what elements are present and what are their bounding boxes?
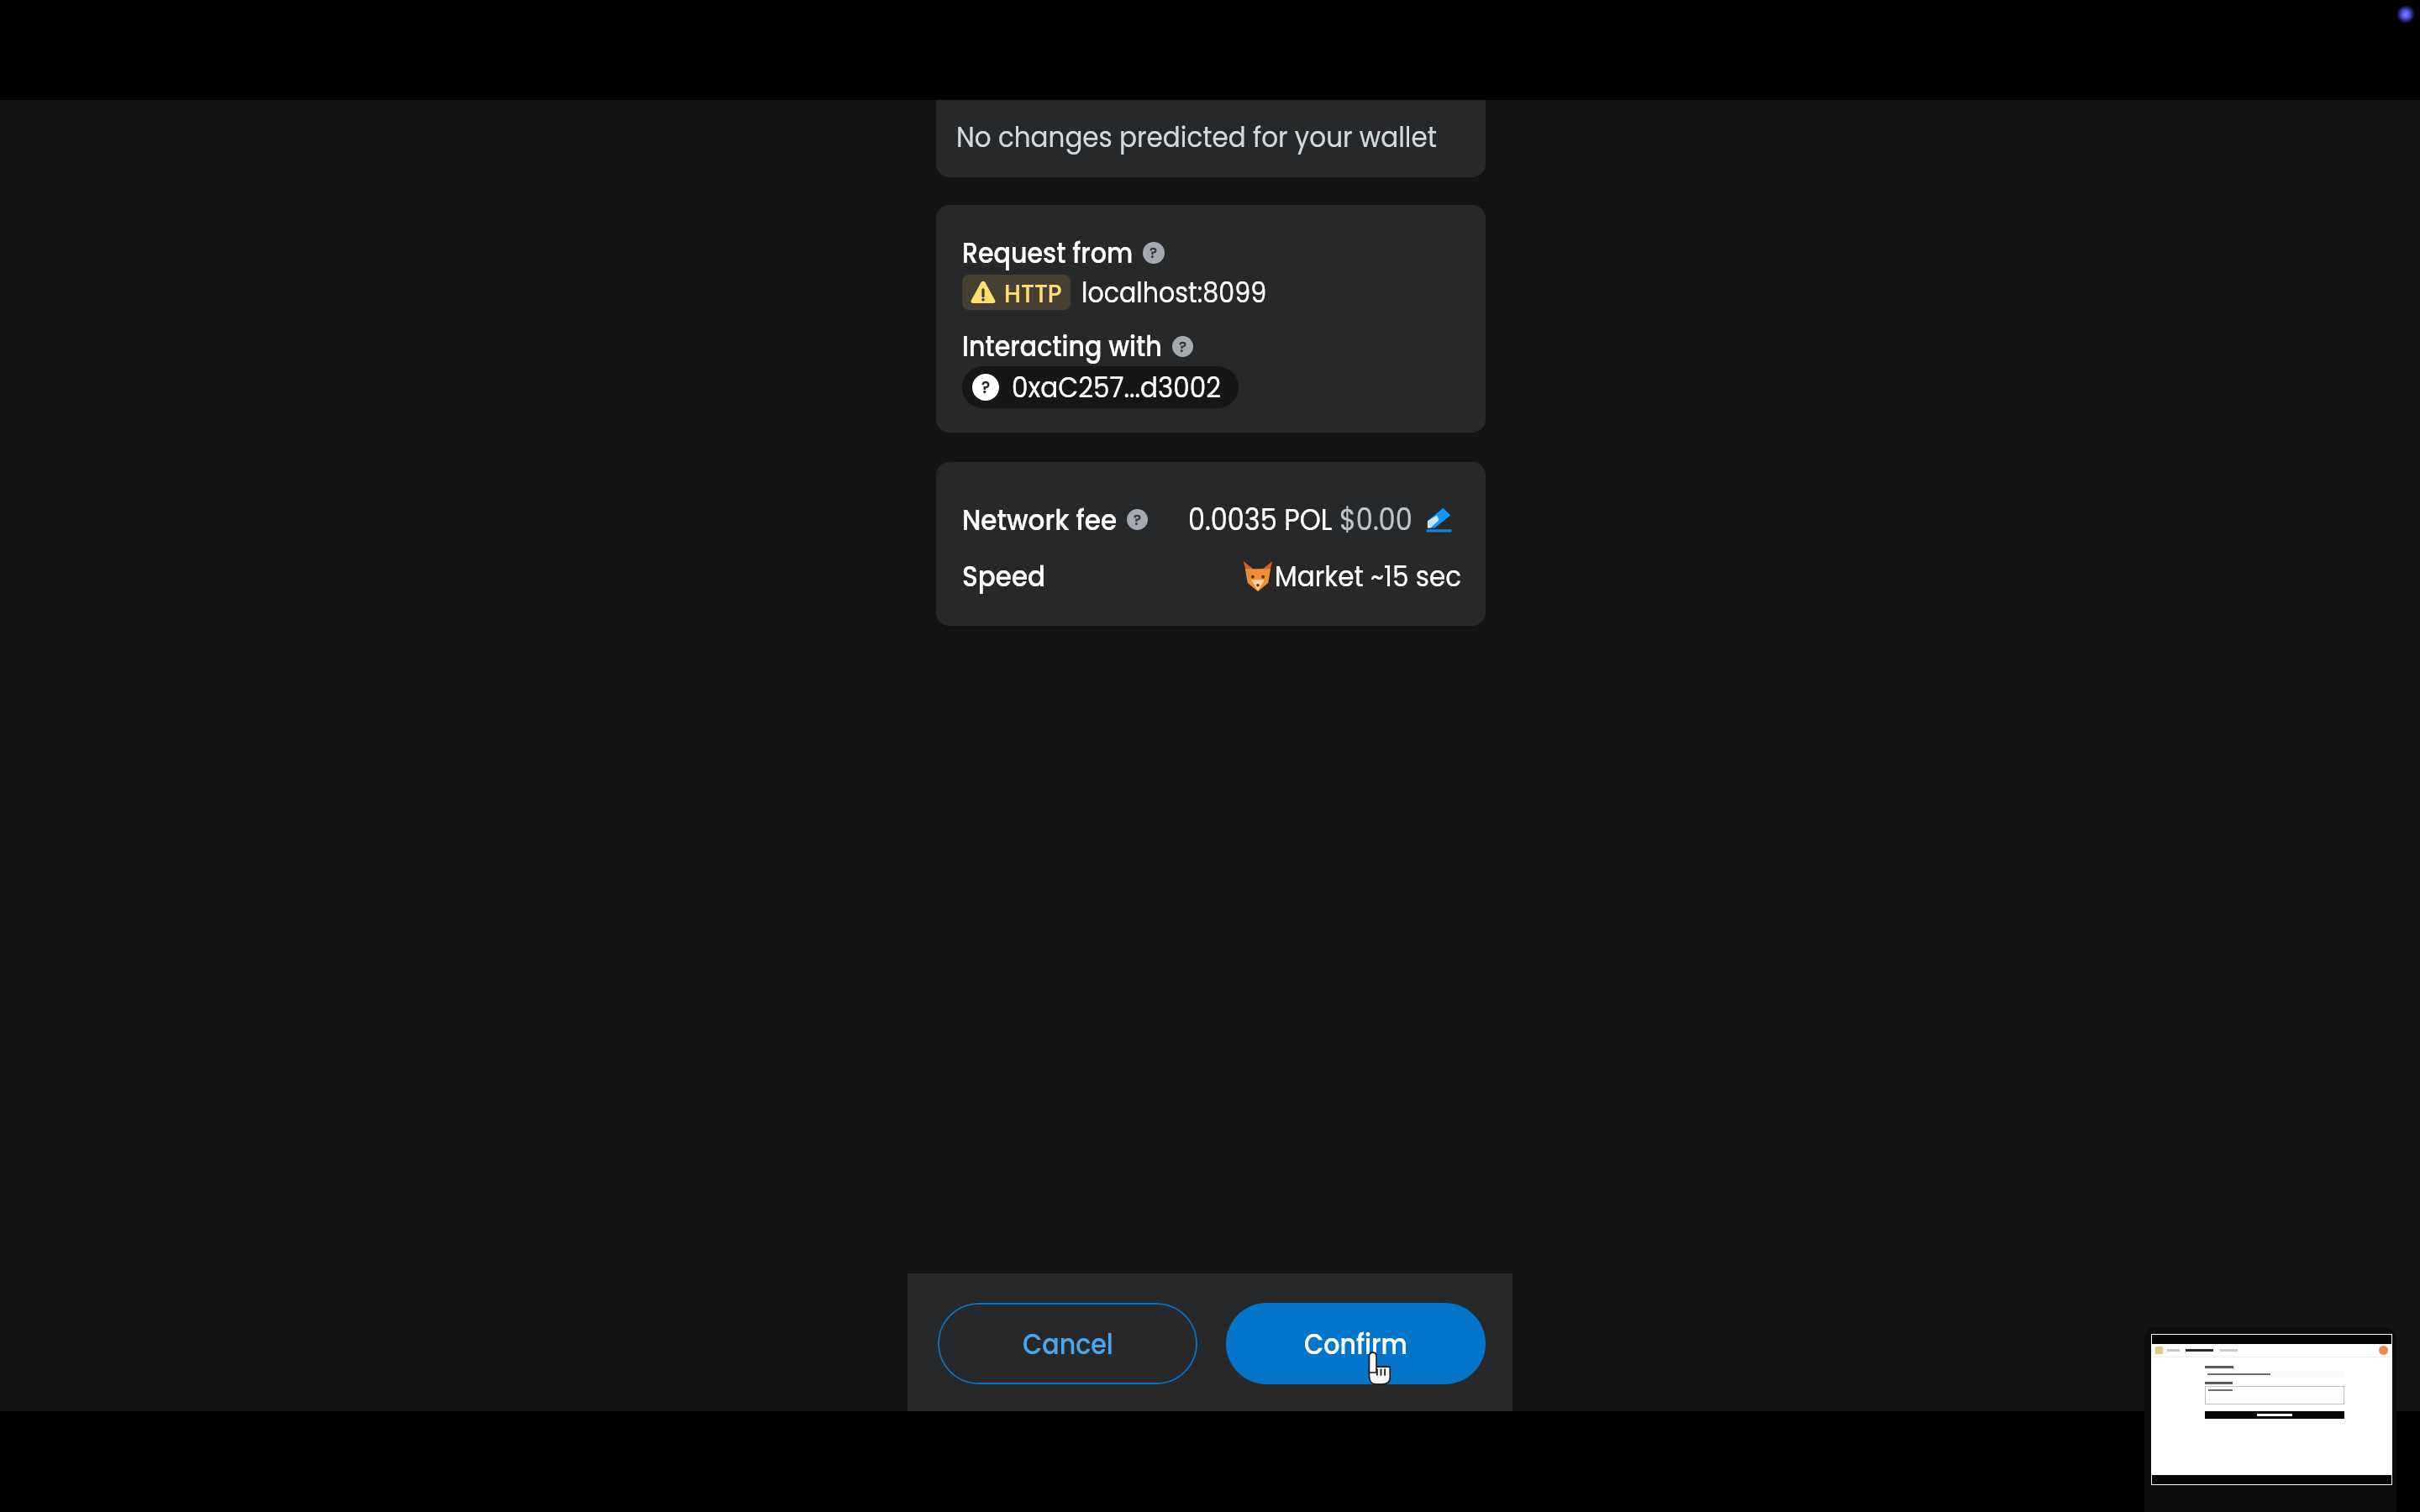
button[interactable]: More information	[1143, 242, 1165, 264]
button[interactable]: Market ~15 sec	[1243, 556, 1461, 596]
button[interactable]: No changes predicted for your wallet	[936, 87, 1486, 177]
staticText: Market ~15 sec	[1275, 556, 1462, 596]
staticText: HTTP	[1004, 275, 1062, 310]
staticText: Speed	[962, 556, 1046, 596]
staticText: ?	[1149, 243, 1158, 263]
staticText: Request from	[962, 234, 1133, 272]
staticText: 0xaC257...d3002	[1012, 367, 1222, 407]
button[interactable]: Cancel	[938, 1303, 1197, 1384]
button[interactable]: Edit network fee	[1426, 507, 1452, 533]
button[interactable]: More information	[1127, 509, 1148, 530]
staticText: ?	[1179, 337, 1187, 357]
staticText: No changes predicted for your wallet	[956, 117, 1437, 157]
button[interactable]: ?	[962, 366, 1239, 408]
staticText: $0.00	[1339, 499, 1413, 540]
staticText: localhost:8099	[1081, 273, 1267, 312]
staticText: 0.0035 POL	[1188, 499, 1340, 540]
button[interactable]: Confirm	[1226, 1303, 1486, 1384]
button[interactable]: More information	[1172, 336, 1193, 357]
staticText: Network fee	[962, 500, 1117, 540]
staticText: Cancel	[1023, 1325, 1114, 1363]
staticText: ?	[1134, 510, 1142, 530]
staticText: Confirm	[1304, 1325, 1408, 1363]
staticText: ?	[981, 376, 991, 399]
staticText: Interacting with	[962, 327, 1162, 365]
